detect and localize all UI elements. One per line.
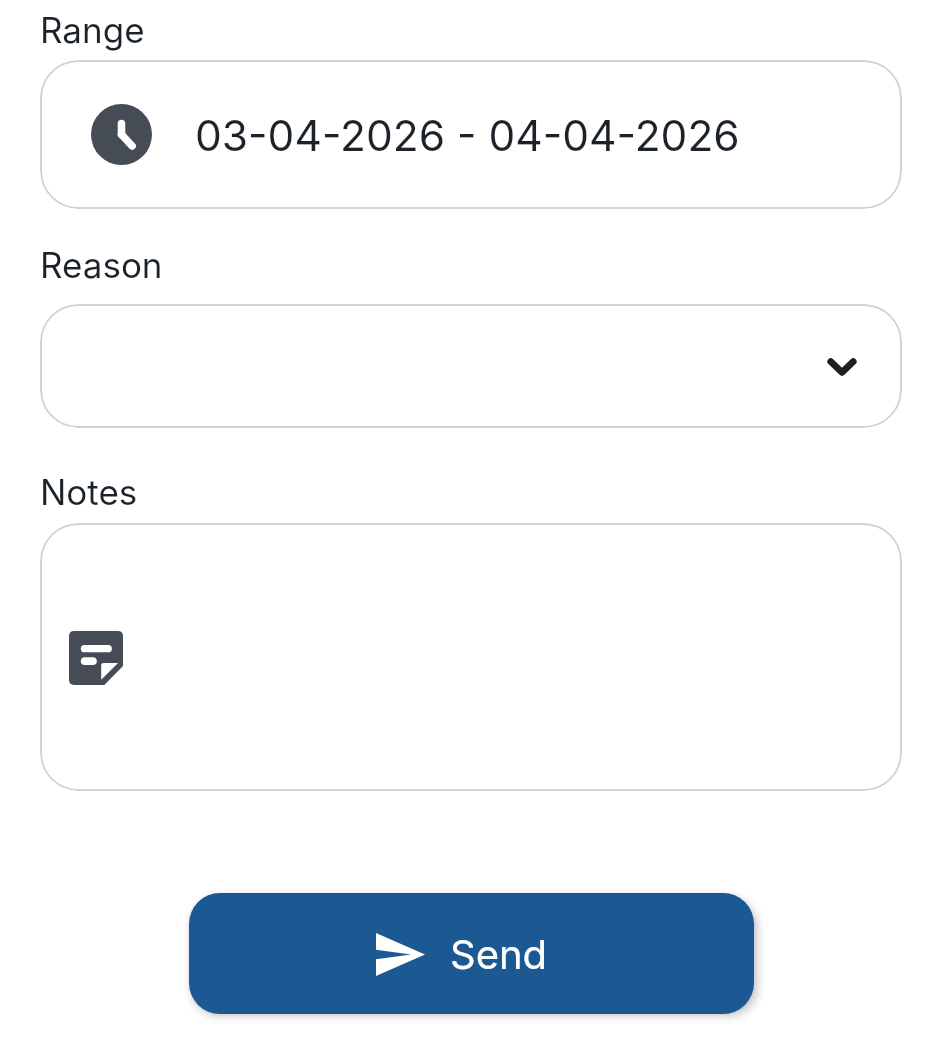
staticText: Notes [40, 471, 138, 513]
staticText: Range [40, 9, 145, 51]
button[interactable]: Notes [40, 523, 902, 791]
staticText: Reason [40, 244, 163, 286]
button[interactable]: Select reason [40, 304, 902, 428]
staticText: 03-04-2026 - 04-04-2026 [195, 110, 740, 161]
button[interactable]: Send [189, 893, 754, 1014]
staticText: Send [450, 930, 548, 978]
button[interactable]: Pick date range [40, 60, 902, 209]
